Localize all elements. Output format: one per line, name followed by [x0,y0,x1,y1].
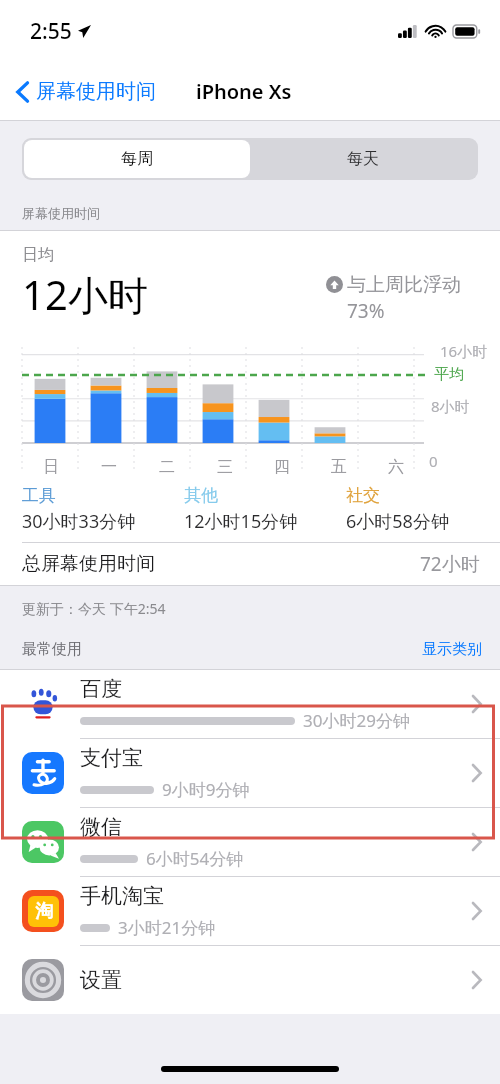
staticText: 更新于：今天 下午2:54 [22,599,166,618]
staticText: 9小时9分钟 [162,778,250,801]
staticText: 30小时33分钟 [22,509,136,534]
staticText: 6小时58分钟 [346,509,449,534]
other: 微信 [22,821,64,863]
staticText: 72小时 [420,551,480,577]
staticText: 屏幕使用时间 [22,205,100,221]
button[interactable]: 总屏幕使用时间 [0,543,500,585]
other: 打开 支付宝 详情 [471,763,482,783]
staticText: 每天 [347,149,379,169]
staticText: 显示类别 [422,640,482,659]
staticText: 6小时54分钟 [146,847,244,870]
other: 打开 设置 详情 [471,970,482,990]
staticText: 平均 [434,365,464,384]
button[interactable]: 每周 [24,140,250,178]
staticText: 12小时15分钟 [184,509,298,534]
other: 手机淘宝 [22,890,64,932]
button[interactable]: 手机淘宝 [0,877,500,945]
staticText: 淘 [35,900,53,923]
staticText: 工具 [22,485,56,506]
staticText: 三 [217,457,233,477]
staticText: 日 [43,457,59,477]
staticText: 最常使用 [22,640,82,659]
staticText: 总屏幕使用时间 [22,552,155,576]
button[interactable]: 每天 [250,140,476,178]
button[interactable]: 设置 [0,946,500,1014]
button[interactable]: 百度 [0,670,500,738]
other: 设置 [22,959,64,1001]
staticText: 8小时 [431,396,470,416]
staticText: 16小时 [440,341,488,361]
other: 打开 微信 详情 [471,832,482,852]
staticText: 设置 [80,967,122,993]
staticText: 每周 [121,149,153,169]
staticText: 与上周比浮动73% [347,273,486,323]
staticText: 12小时 [22,267,148,322]
staticText: 30小时29分钟 [303,709,410,732]
staticText: 日均 [22,245,54,265]
button[interactable]: 微信 [0,808,500,876]
staticText: 支付宝 [80,745,143,771]
staticText: 手机淘宝 [80,883,164,909]
staticText: 一 [101,457,117,477]
button[interactable]: 支付宝 [0,739,500,807]
staticText: 百度 [80,676,122,702]
staticText: 四 [274,457,290,477]
other: 支付宝 [22,752,64,794]
other: 打开 手机淘宝 详情 [471,901,482,921]
button[interactable]: 屏幕使用时间 [12,73,160,110]
staticText: 3小时21分钟 [118,916,216,939]
staticText: 0 [429,451,438,471]
staticText: 社交 [346,485,380,506]
other: 打开 百度 详情 [471,694,482,714]
staticText: 2:55 [30,17,72,46]
button[interactable]: 显示类别 [422,640,482,659]
staticText: 五 [331,457,347,477]
other: 百度 [22,683,64,725]
staticText: iPhone Xs [196,78,292,105]
staticText: 微信 [80,814,122,840]
staticText: 屏幕使用时间 [36,79,156,104]
staticText: 六 [388,457,404,477]
staticText: 二 [159,457,175,477]
staticText: 其他 [184,485,218,506]
